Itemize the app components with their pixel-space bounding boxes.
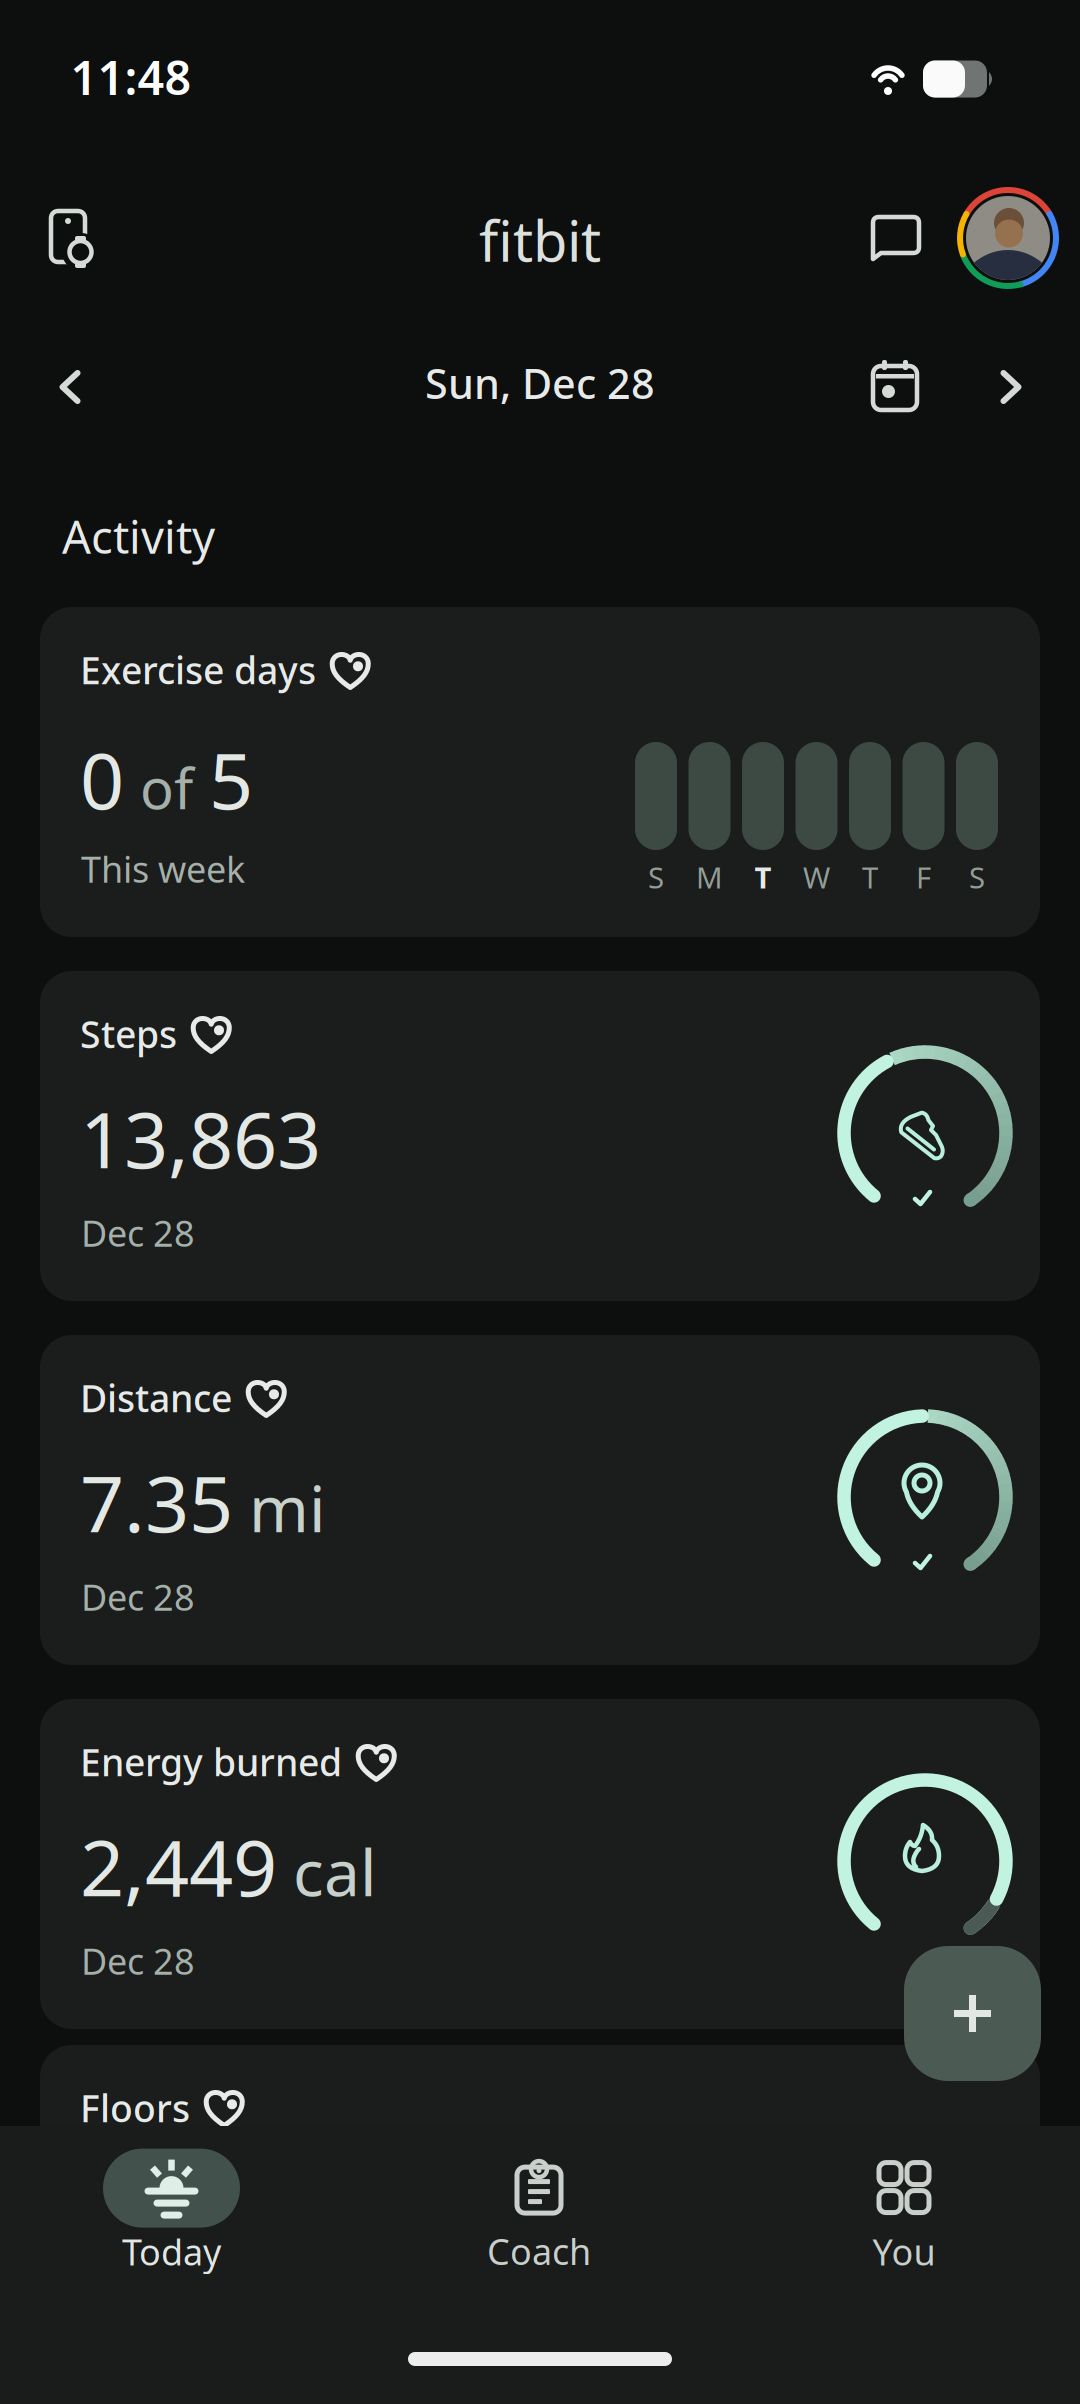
staticText: This week bbox=[81, 845, 245, 893]
staticText: mi bbox=[249, 1465, 326, 1550]
staticText: 5 bbox=[209, 728, 253, 831]
staticText: 11:48 bbox=[70, 46, 191, 108]
button[interactable]: You bbox=[872, 2163, 935, 2275]
button[interactable]: Exercise days bbox=[40, 607, 1040, 937]
staticText: T bbox=[862, 857, 878, 896]
staticText: Steps bbox=[80, 1009, 177, 1059]
staticText: Dec 28 bbox=[81, 1937, 195, 1985]
staticText: Energy burned bbox=[80, 1737, 342, 1787]
button[interactable]: Messages bbox=[871, 215, 921, 263]
button[interactable]: Coach bbox=[487, 2161, 591, 2275]
staticText: W bbox=[803, 857, 830, 896]
button[interactable]: Distance bbox=[40, 1335, 1040, 1665]
button[interactable]: Floors bbox=[40, 2045, 1040, 2375]
staticText: Coach bbox=[487, 2227, 591, 2275]
staticText: M bbox=[696, 857, 723, 896]
staticText: S bbox=[969, 857, 985, 896]
button[interactable]: Calendar bbox=[873, 360, 917, 412]
staticText: Dec 28 bbox=[81, 1573, 195, 1621]
staticText: S bbox=[648, 857, 664, 896]
staticText: Exercise days bbox=[80, 645, 316, 695]
button[interactable]: Energy burned bbox=[40, 1699, 1040, 2029]
staticText: Distance bbox=[80, 1373, 232, 1423]
staticText: cal bbox=[293, 1829, 377, 1914]
button[interactable]: Devices bbox=[49, 209, 97, 269]
staticText: 7.35 bbox=[80, 1451, 233, 1554]
staticText: of bbox=[140, 750, 193, 825]
button[interactable]: Add bbox=[904, 1946, 1041, 2081]
staticText: Floors bbox=[80, 2083, 190, 2133]
staticText: F bbox=[916, 857, 931, 896]
staticText: Today bbox=[122, 2228, 221, 2275]
staticText: 2,449 bbox=[80, 1815, 277, 1918]
staticText: You bbox=[872, 2228, 935, 2275]
staticText: fitbit bbox=[479, 203, 601, 277]
staticText: 0 bbox=[80, 728, 124, 831]
staticText: Sun, Dec 28 bbox=[425, 356, 655, 410]
staticText: Activity bbox=[62, 506, 215, 566]
button[interactable]: Steps bbox=[40, 971, 1040, 1301]
staticText: Dec 28 bbox=[81, 1209, 195, 1257]
button[interactable]: Next day bbox=[989, 359, 1032, 415]
button[interactable]: Previous day bbox=[48, 359, 91, 415]
staticText: T bbox=[754, 857, 771, 896]
button[interactable]: Today bbox=[103, 2149, 240, 2275]
button[interactable]: Profile bbox=[956, 186, 1060, 290]
staticText: 13,863 bbox=[80, 1087, 321, 1190]
